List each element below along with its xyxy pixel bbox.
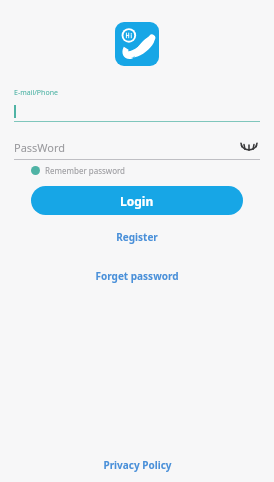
staticText: E-mail/Phone <box>14 88 58 98</box>
button[interactable]: Forget password <box>79 265 195 287</box>
button[interactable]: Show password <box>238 139 260 155</box>
staticText: PassWord <box>14 140 66 155</box>
staticText: Login <box>120 193 154 209</box>
staticText: Register <box>116 230 158 244</box>
staticText: Privacy Policy <box>103 458 172 472</box>
button[interactable]: PassWord <box>14 139 260 160</box>
button[interactable]: Privacy Policy <box>87 454 188 476</box>
other: App logo <box>115 22 159 66</box>
staticText: Remember password <box>45 165 126 176</box>
button[interactable]: E-mail/Phone <box>14 88 260 122</box>
staticText: Forget password <box>95 269 179 283</box>
button[interactable]: Register <box>100 226 174 248</box>
button[interactable]: Login <box>31 186 243 215</box>
button[interactable]: Remember password <box>31 165 126 176</box>
